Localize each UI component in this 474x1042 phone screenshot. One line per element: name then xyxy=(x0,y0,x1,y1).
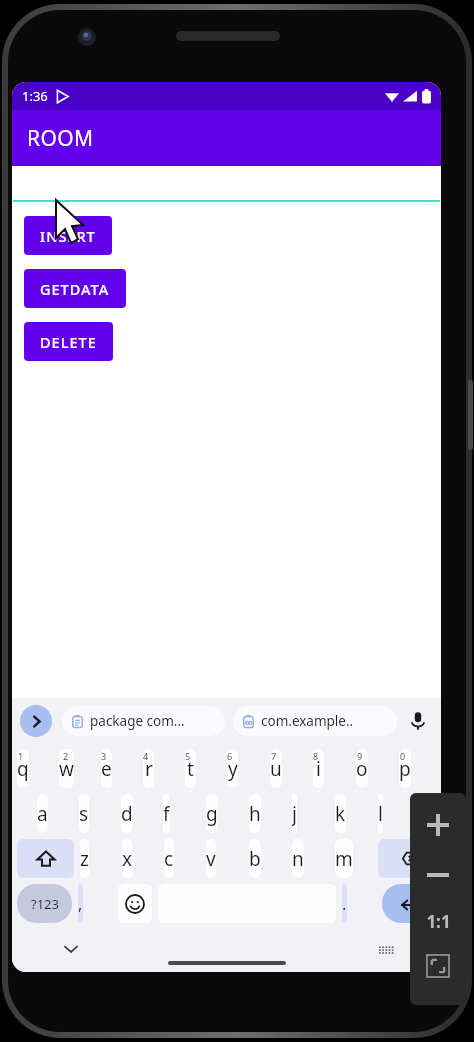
staticText: com.example.. xyxy=(261,712,354,730)
button[interactable]: b xyxy=(249,839,261,878)
button[interactable]: o xyxy=(356,749,368,788)
button[interactable]: s xyxy=(79,794,89,833)
staticText: DELETE xyxy=(40,332,97,352)
staticText: 2 xyxy=(63,750,69,762)
button[interactable]: z xyxy=(80,839,89,878)
button[interactable]: g xyxy=(206,794,218,833)
button[interactable]: DELETE xyxy=(24,322,113,361)
button[interactable]: i xyxy=(313,749,324,788)
staticText: 1:36 xyxy=(22,87,48,105)
button[interactable]: INSERT xyxy=(24,216,112,255)
button[interactable]: Zoom in xyxy=(420,807,456,843)
button[interactable]: h xyxy=(249,794,261,833)
staticText: t xyxy=(187,756,194,782)
staticText: v xyxy=(206,846,216,872)
staticText: g xyxy=(206,801,218,827)
staticText: w xyxy=(59,756,74,782)
staticText: d xyxy=(121,801,133,827)
staticText: GETDATA xyxy=(40,279,110,299)
staticText: 6 xyxy=(227,750,233,762)
button[interactable]: Voice input xyxy=(403,706,433,736)
button[interactable]: y xyxy=(227,749,238,788)
button[interactable]: q xyxy=(17,749,29,788)
button[interactable]: Hide keyboard xyxy=(56,934,86,964)
staticText: k xyxy=(335,801,346,827)
staticText: n xyxy=(292,846,304,872)
button[interactable]: u xyxy=(270,749,282,788)
button[interactable]: n xyxy=(292,839,304,878)
staticText: 7 xyxy=(271,750,277,762)
button[interactable]: Change keyboard xyxy=(373,936,399,962)
staticText: f xyxy=(163,801,170,827)
button[interactable]: Backspace xyxy=(378,839,436,878)
button[interactable]: ?123 xyxy=(17,884,72,923)
button[interactable]: l xyxy=(378,794,383,833)
staticText: b xyxy=(249,846,261,872)
button[interactable]: v xyxy=(206,839,216,878)
button[interactable]: . xyxy=(342,884,347,923)
staticText: y xyxy=(228,756,238,782)
button[interactable]: a xyxy=(37,794,48,833)
button[interactable]: c xyxy=(164,839,174,878)
staticText: 8 xyxy=(313,750,319,762)
staticText: INSERT xyxy=(40,226,96,246)
button[interactable]: d xyxy=(121,794,133,833)
staticText: m xyxy=(335,846,353,872)
staticText: 1 xyxy=(18,750,24,762)
staticText: s xyxy=(79,801,89,827)
staticText: u xyxy=(270,756,282,782)
button[interactable]: Fit to screen xyxy=(421,949,455,983)
button[interactable]: r xyxy=(143,749,154,788)
button[interactable]: com.example.. xyxy=(233,706,397,736)
button[interactable]: Shift xyxy=(17,839,74,878)
button[interactable]: package com... xyxy=(62,706,225,736)
staticText: a xyxy=(37,801,48,827)
staticText: 4 xyxy=(143,750,149,762)
button[interactable]: k xyxy=(335,794,346,833)
button[interactable]: , xyxy=(78,884,83,923)
staticText: j xyxy=(292,801,297,827)
staticText: p xyxy=(399,756,411,782)
button[interactable]: p xyxy=(399,749,411,788)
staticText: c xyxy=(164,846,174,872)
button[interactable]: w xyxy=(59,749,74,788)
staticText: 5 xyxy=(185,750,191,762)
button[interactable]: GETDATA xyxy=(24,269,126,308)
button[interactable]: x xyxy=(122,839,133,878)
staticText: 1:1 xyxy=(426,910,451,933)
button[interactable] xyxy=(13,200,440,202)
button[interactable]: j xyxy=(292,794,297,833)
button[interactable]: f xyxy=(163,794,170,833)
staticText: ROOM xyxy=(27,124,94,153)
button[interactable]: 1:1 xyxy=(416,905,460,937)
button[interactable]: e xyxy=(101,749,112,788)
button[interactable]: Emoji xyxy=(118,884,152,923)
staticText: . xyxy=(342,893,347,915)
staticText: z xyxy=(80,846,89,872)
button[interactable]: Enter xyxy=(382,884,436,923)
staticText: 3 xyxy=(101,750,107,762)
staticText: 9 xyxy=(357,750,363,762)
staticText: e xyxy=(101,756,112,782)
staticText: 0 xyxy=(400,750,406,762)
staticText: package com... xyxy=(90,712,185,730)
staticText: ?123 xyxy=(31,895,59,913)
staticText: o xyxy=(356,756,368,782)
staticText: i xyxy=(316,756,321,782)
staticText: l xyxy=(378,801,383,827)
button[interactable]: Expand suggestions xyxy=(20,705,52,737)
staticText: x xyxy=(122,846,133,872)
staticText: q xyxy=(17,756,29,782)
button[interactable]: m xyxy=(335,839,353,878)
staticText: h xyxy=(249,801,261,827)
staticText: , xyxy=(78,893,83,915)
button[interactable]: t xyxy=(185,749,196,788)
button[interactable]: Zoom out xyxy=(420,857,456,893)
staticText: r xyxy=(145,756,153,782)
